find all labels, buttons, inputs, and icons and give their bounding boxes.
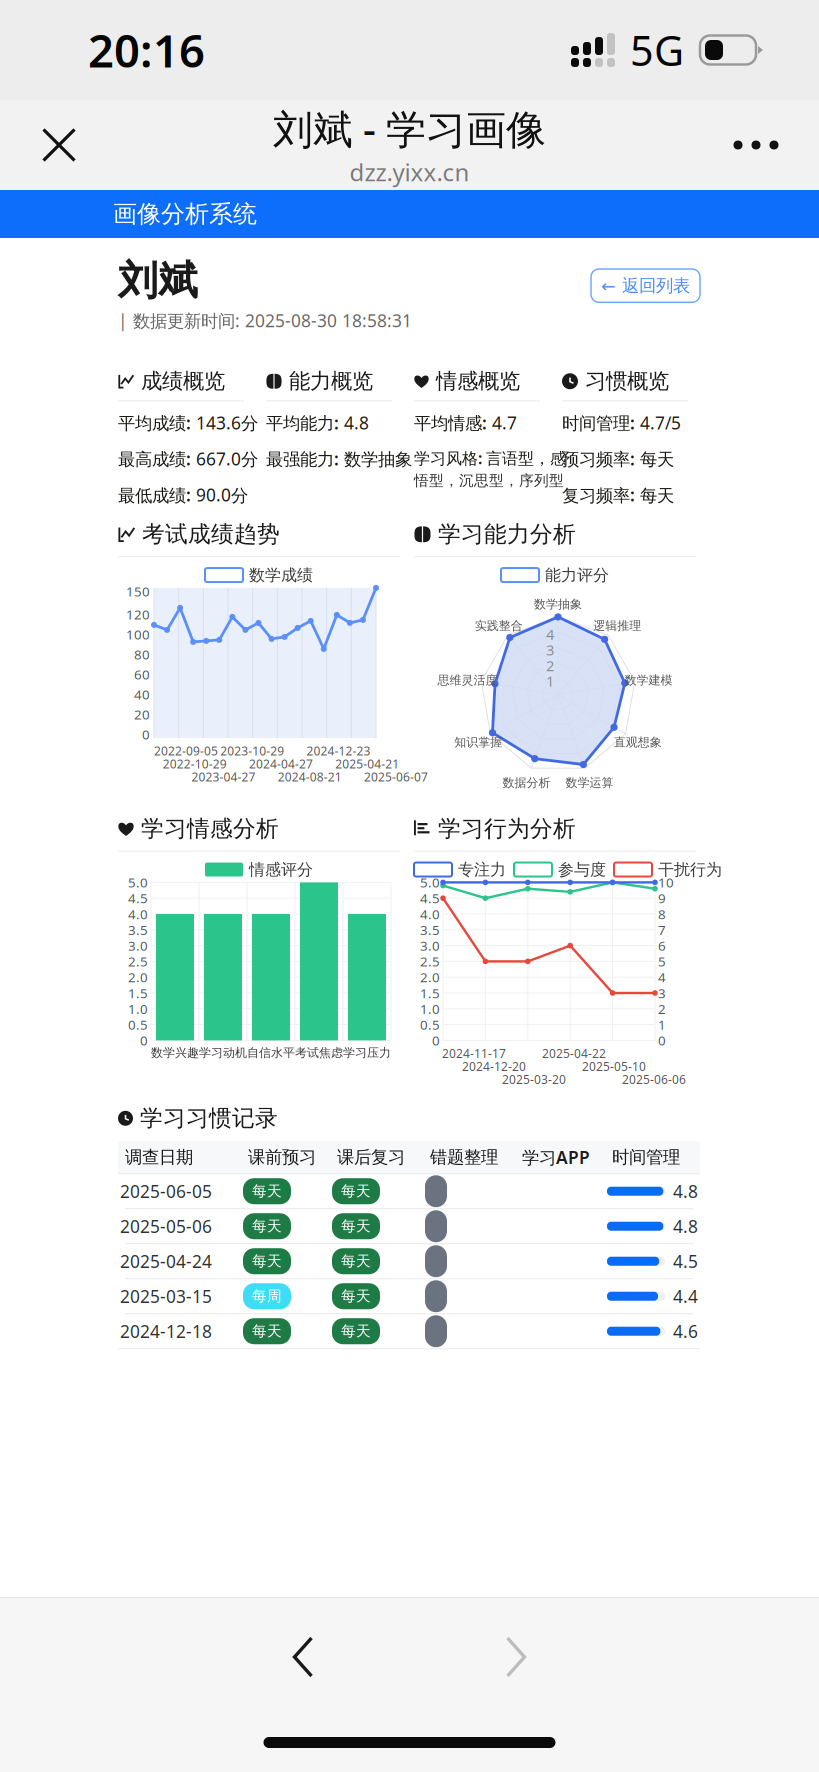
staticText: 2025-03-15 bbox=[120, 1285, 212, 1308]
staticText: 4.5 bbox=[673, 1250, 698, 1273]
staticText: 1.0 bbox=[420, 1000, 440, 1018]
staticText: 成绩概览 bbox=[141, 368, 225, 394]
staticText: 2.5 bbox=[420, 952, 440, 970]
staticText: 2.0 bbox=[420, 968, 440, 986]
staticText: 2025-03-20 bbox=[502, 1071, 566, 1087]
staticText: 2.5 bbox=[128, 952, 148, 970]
staticText: 3.5 bbox=[420, 921, 440, 939]
staticText: 5.0 bbox=[128, 873, 148, 891]
staticText: 悟型，沉思型，序列型 bbox=[414, 472, 564, 490]
staticText: 4.6 bbox=[673, 1320, 698, 1343]
staticText: 0.5 bbox=[128, 1016, 148, 1033]
staticText: 能力评分 bbox=[545, 565, 609, 585]
staticText: 情感概览 bbox=[436, 368, 520, 394]
staticText: 3.0 bbox=[128, 937, 148, 954]
staticText: 学习APP bbox=[522, 1146, 590, 1169]
staticText: 2025-06-05 bbox=[120, 1180, 212, 1203]
staticText: 2025-06-06 bbox=[622, 1071, 686, 1087]
staticText: 2023-10-29 bbox=[220, 743, 284, 759]
staticText: 每天 bbox=[252, 1182, 282, 1200]
button[interactable]: Forward bbox=[477, 1619, 553, 1695]
staticText: 2 bbox=[658, 1000, 666, 1018]
staticText: 能力概览 bbox=[289, 368, 373, 394]
staticText: 4.5 bbox=[128, 889, 148, 907]
staticText: 1.5 bbox=[128, 984, 148, 1002]
staticText: 150 bbox=[126, 582, 150, 600]
staticText: 1 bbox=[546, 671, 554, 691]
staticText: 2025-05-06 bbox=[120, 1215, 212, 1238]
staticText: 复习频率: 每天 bbox=[562, 483, 674, 506]
staticText: 2024-11-17 bbox=[442, 1045, 506, 1061]
staticText: 自信水平 bbox=[247, 1045, 295, 1060]
staticText: 2023-04-27 bbox=[191, 769, 255, 785]
staticText: 20:16 bbox=[88, 20, 205, 80]
staticText: 逻辑推理 bbox=[593, 618, 641, 633]
staticText: 调查日期 bbox=[125, 1147, 193, 1168]
staticText: 最低成绩: 90.0分 bbox=[118, 483, 248, 506]
staticText: 0 bbox=[658, 1031, 666, 1049]
button[interactable]: More bbox=[723, 112, 789, 178]
staticText: 学习情感分析 bbox=[141, 815, 279, 843]
staticText: 20 bbox=[134, 705, 150, 723]
staticText: 干扰行为 bbox=[658, 860, 722, 879]
staticText: 平均情感: 4.7 bbox=[414, 411, 517, 434]
staticText: 3 bbox=[546, 640, 554, 660]
staticText: 时间管理: 4.7/5 bbox=[562, 411, 681, 434]
staticText: 每天 bbox=[252, 1217, 282, 1235]
staticText: 学习风格: 言语型，感 bbox=[414, 447, 566, 469]
staticText: 考试成绩趋势 bbox=[142, 520, 280, 548]
staticText: 0 bbox=[142, 725, 150, 743]
staticText: 平均能力: 4.8 bbox=[266, 411, 369, 434]
staticText: 2024-12-18 bbox=[120, 1320, 212, 1343]
staticText: 4.4 bbox=[673, 1285, 698, 1308]
staticText: 学习行为分析 bbox=[438, 815, 576, 843]
staticText: 学习习惯记录 bbox=[140, 1104, 278, 1132]
staticText: 60 bbox=[134, 665, 150, 683]
staticText: dzz.yixx.cn bbox=[349, 156, 469, 188]
staticText: 直观想象 bbox=[614, 735, 662, 750]
staticText: 每周 bbox=[252, 1287, 282, 1305]
staticText: 2025-04-21 bbox=[335, 756, 399, 772]
staticText: 每天 bbox=[341, 1217, 371, 1235]
staticText: 0 bbox=[432, 1031, 440, 1049]
staticText: 2025-04-24 bbox=[120, 1250, 212, 1273]
staticText: 2025-05-10 bbox=[582, 1058, 646, 1074]
staticText: 120 bbox=[126, 605, 150, 623]
staticText: 平均成绩: 143.6分 bbox=[118, 411, 258, 434]
button[interactable]: Close bbox=[26, 112, 92, 178]
staticText: 4.0 bbox=[128, 905, 148, 923]
staticText: 4 bbox=[546, 625, 554, 644]
staticText: 2022-09-05 bbox=[154, 743, 218, 759]
staticText: 知识掌握 bbox=[454, 735, 502, 750]
staticText: ← 返回列表 bbox=[601, 275, 690, 296]
staticText: 实践整合 bbox=[475, 618, 523, 633]
staticText: 4.8 bbox=[673, 1215, 698, 1238]
staticText: 2024-08-21 bbox=[278, 769, 342, 785]
staticText: 9 bbox=[658, 889, 666, 907]
staticText: 100 bbox=[126, 625, 150, 643]
button[interactable]: Back bbox=[265, 1619, 341, 1695]
staticText: 学习压力 bbox=[343, 1045, 391, 1060]
staticText: 5G bbox=[630, 23, 684, 77]
staticText: 2022-10-29 bbox=[163, 756, 227, 772]
button[interactable]: ← 返回列表 bbox=[591, 269, 700, 302]
staticText: 1 bbox=[658, 1016, 666, 1033]
staticText: 数学运算 bbox=[565, 775, 613, 790]
staticText: 最强能力: 数学抽象 bbox=[266, 447, 412, 470]
staticText: 每天 bbox=[252, 1322, 282, 1340]
staticText: 1.0 bbox=[128, 1000, 148, 1018]
staticText: 思维灵活度 bbox=[437, 673, 497, 688]
staticText: 习惯概览 bbox=[585, 368, 669, 394]
staticText: 5.0 bbox=[420, 873, 440, 891]
staticText: 7 bbox=[658, 921, 666, 939]
staticText: 4 bbox=[658, 968, 666, 986]
staticText: 数学建模 bbox=[625, 673, 673, 688]
staticText: 专注力 bbox=[458, 860, 506, 879]
staticText: 情感评分 bbox=[249, 860, 313, 879]
staticText: 3.0 bbox=[420, 937, 440, 954]
staticText: 课后复习 bbox=[337, 1147, 405, 1168]
staticText: 每天 bbox=[252, 1252, 282, 1270]
staticText: 2024-12-20 bbox=[462, 1058, 526, 1074]
staticText: 3.5 bbox=[128, 921, 148, 939]
staticText: 2024-04-27 bbox=[249, 756, 313, 772]
